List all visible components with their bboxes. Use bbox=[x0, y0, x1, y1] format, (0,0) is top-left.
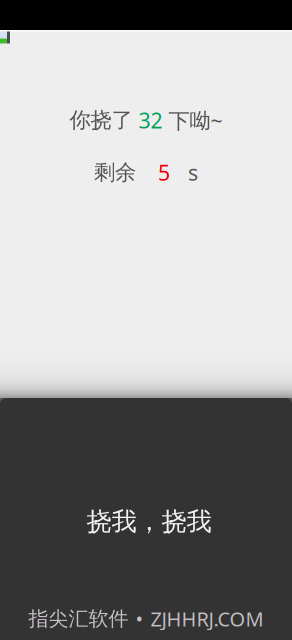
staticText: 32 bbox=[132, 106, 168, 134]
staticText: 剩余 bbox=[94, 159, 136, 186]
staticText: s bbox=[188, 158, 198, 187]
staticText: 你挠了 bbox=[69, 107, 132, 133]
button[interactable]: 挠我，挠我 bbox=[0, 398, 292, 608]
staticText: 挠我，挠我 bbox=[86, 506, 211, 537]
staticText: 下呦~ bbox=[168, 106, 222, 134]
staticText: ZJHHRJ.COM bbox=[150, 605, 263, 632]
staticText: • bbox=[135, 605, 143, 632]
staticText: 指尖汇软件 bbox=[28, 606, 128, 631]
staticText: 5 bbox=[158, 158, 170, 187]
